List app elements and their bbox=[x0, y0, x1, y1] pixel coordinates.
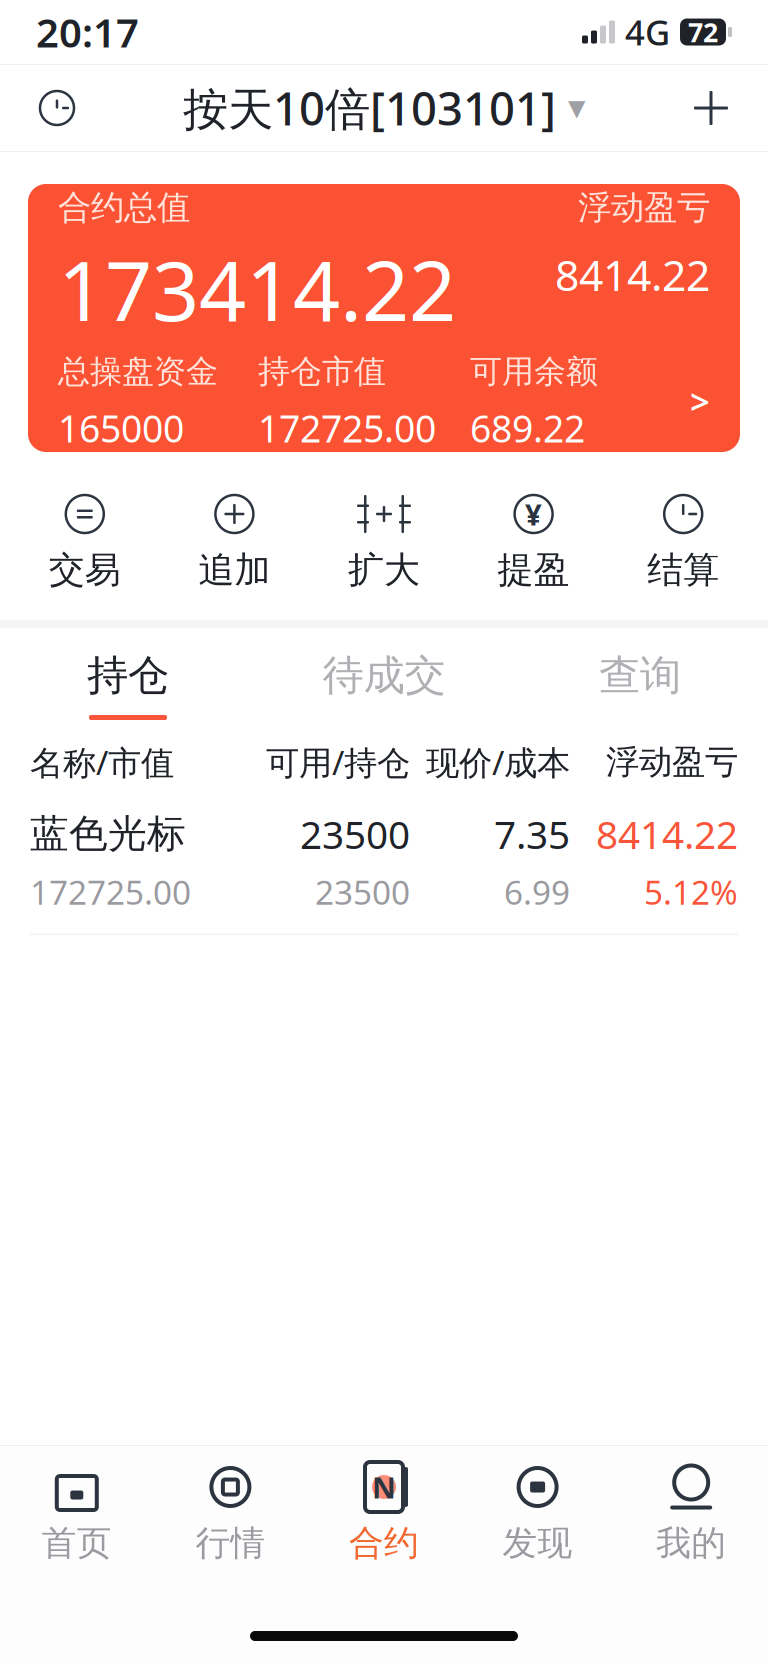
staticText: 持仓 bbox=[87, 650, 169, 701]
staticText: ▼ bbox=[568, 95, 585, 121]
button[interactable]: 发现 bbox=[461, 1446, 614, 1575]
staticText: 23500 bbox=[315, 870, 410, 914]
staticText: 持仓市值 bbox=[258, 352, 386, 391]
staticText: 合约 bbox=[349, 1522, 419, 1565]
staticText: ¥ bbox=[525, 494, 542, 533]
staticText: 按天10倍[103101] bbox=[183, 78, 556, 138]
staticText: 首页 bbox=[42, 1522, 112, 1565]
button[interactable]: N bbox=[307, 1446, 461, 1575]
staticText: 蓝色光标 bbox=[30, 810, 186, 858]
staticText: 名称/市值 bbox=[30, 740, 174, 784]
staticText: 总操盘资金 bbox=[58, 352, 218, 391]
button[interactable]: 蓝色光标 bbox=[0, 784, 768, 934]
staticText: 23500 bbox=[300, 808, 410, 860]
staticText: > bbox=[690, 378, 710, 424]
button[interactable]: 交易 bbox=[10, 482, 160, 602]
button[interactable]: 按天10倍[103101] bbox=[183, 78, 585, 138]
staticText: 现价/成本 bbox=[426, 740, 570, 784]
button[interactable]: ¥ bbox=[459, 482, 608, 602]
staticText: 7.35 bbox=[494, 808, 570, 860]
button[interactable]: History bbox=[22, 73, 92, 143]
button[interactable]: 合约总值 bbox=[28, 184, 740, 452]
staticText: 待成交 bbox=[322, 650, 445, 701]
staticText: 165000 bbox=[58, 403, 184, 453]
button[interactable]: 结算 bbox=[608, 482, 758, 602]
staticText: 结算 bbox=[647, 548, 719, 592]
button[interactable]: 追加 bbox=[160, 482, 309, 602]
button[interactable]: 查询 bbox=[512, 628, 768, 732]
button[interactable]: 持仓 bbox=[0, 628, 256, 732]
button[interactable]: 行情 bbox=[154, 1446, 307, 1575]
staticText: 173414.22 bbox=[58, 234, 456, 344]
staticText: 6.99 bbox=[504, 870, 570, 914]
staticText: 合约总值 bbox=[58, 187, 190, 228]
staticText: 查询 bbox=[599, 650, 681, 701]
staticText: 扩大 bbox=[348, 548, 420, 592]
staticText: 72 bbox=[688, 14, 718, 50]
staticText: 可用余额 bbox=[470, 352, 598, 391]
staticText: 追加 bbox=[198, 548, 270, 592]
staticText: 4G bbox=[625, 9, 670, 55]
staticText: 提盈 bbox=[498, 548, 570, 592]
staticText: 20:17 bbox=[36, 5, 139, 58]
staticText: 可用/持仓 bbox=[266, 740, 410, 784]
staticText: 689.22 bbox=[470, 403, 585, 453]
staticText: 8414.22 bbox=[555, 246, 710, 303]
staticText: 浮动盈亏 bbox=[578, 187, 710, 228]
staticText: 交易 bbox=[49, 548, 121, 592]
staticText: 发现 bbox=[503, 1522, 573, 1565]
staticText: 浮动盈亏 bbox=[606, 742, 738, 782]
staticText: 172725.00 bbox=[258, 403, 436, 453]
staticText: 5.12% bbox=[644, 870, 738, 914]
staticText: N bbox=[372, 1467, 396, 1506]
staticText: 行情 bbox=[195, 1522, 265, 1565]
staticText: 172725.00 bbox=[30, 870, 191, 914]
button[interactable]: Add bbox=[676, 73, 746, 143]
button[interactable]: ⌂ bbox=[0, 1446, 154, 1575]
staticText: 我的 bbox=[656, 1522, 726, 1565]
button[interactable]: 待成交 bbox=[256, 628, 512, 732]
button[interactable]: 扩大 bbox=[309, 482, 459, 602]
button[interactable]: 我的 bbox=[614, 1446, 768, 1575]
staticText: 8414.22 bbox=[596, 808, 738, 860]
